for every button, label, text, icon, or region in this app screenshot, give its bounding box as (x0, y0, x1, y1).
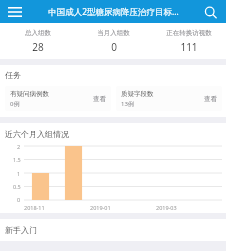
staticText: 近六个月入组情况 (5, 129, 69, 139)
staticText: 查看 (204, 95, 217, 103)
staticText: 28 (32, 40, 44, 54)
button[interactable]: 质疑字段数 (116, 86, 222, 111)
button[interactable]: 正在转换访视数 (151, 29, 226, 54)
button[interactable]: 有疑问病例数 (5, 86, 111, 111)
staticText: 当月入组数 (97, 29, 130, 37)
staticText: 中国成人2型糖尿病降压治疗目标… (48, 6, 179, 18)
staticText: 0 (111, 40, 117, 54)
staticText: 正在转换访视数 (166, 29, 212, 37)
staticText: 2019-01 (90, 204, 111, 211)
button[interactable]: 当月入组数 (76, 29, 151, 54)
button[interactable]: Menu (5, 2, 25, 22)
staticText: 1 (17, 170, 21, 177)
staticText: 2 (17, 143, 21, 150)
button[interactable]: 总入组数 (0, 29, 76, 54)
staticText: 2019-03 (156, 204, 177, 211)
staticText: 111 (180, 40, 198, 54)
staticText: 2018-11 (24, 204, 45, 211)
staticText: 查看 (93, 95, 106, 103)
staticText: 质疑字段数 (121, 90, 154, 98)
button[interactable]: Search (200, 2, 220, 22)
staticText: 任务 (5, 70, 21, 80)
staticText: 0 (17, 196, 21, 203)
staticText: 总入组数 (25, 29, 51, 37)
staticText: 0例 (10, 100, 20, 108)
staticText: 有疑问病例数 (10, 90, 49, 98)
staticText: 0.5 (13, 183, 21, 190)
staticText: 13例 (121, 100, 134, 108)
staticText: 1.5 (13, 156, 21, 163)
staticText: 新手入门 (5, 225, 37, 235)
